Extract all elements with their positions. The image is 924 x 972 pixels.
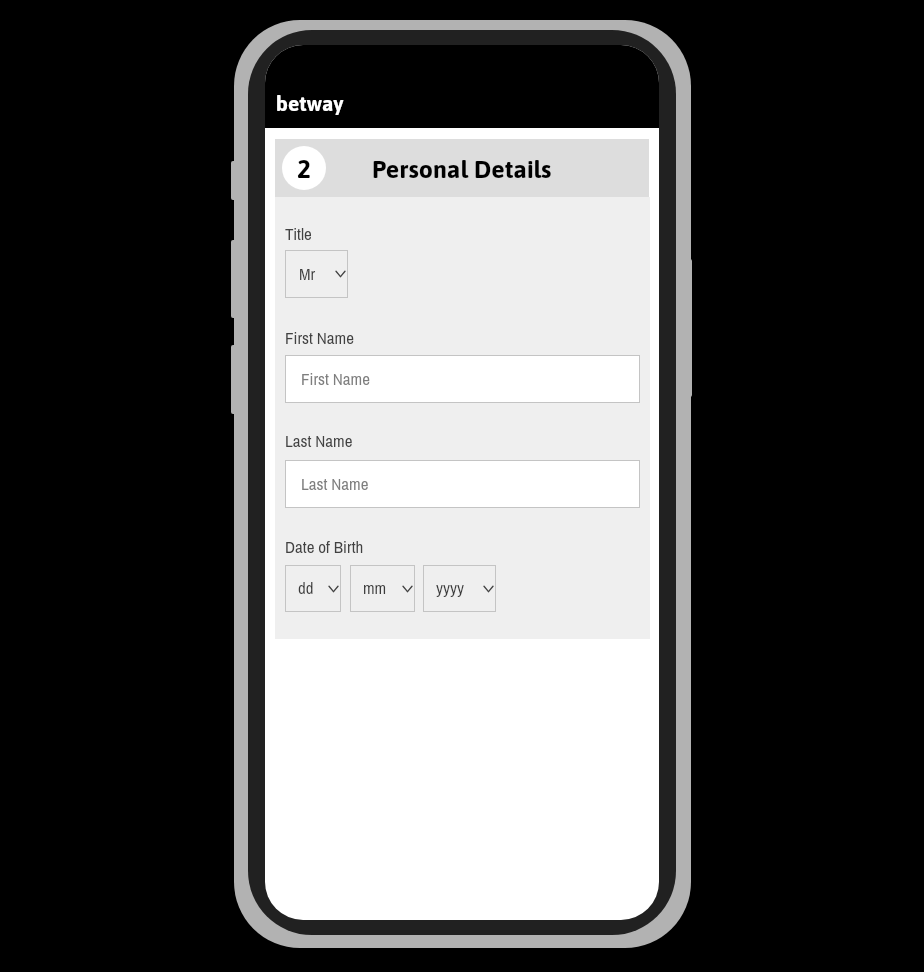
staticText: dd [298,576,314,599]
staticText: 2 [297,154,311,184]
staticText: First Name [301,367,370,390]
staticText: First Name [285,326,354,349]
button[interactable]: dd dropdown [285,565,341,612]
staticText: Personal Details [372,155,552,184]
button[interactable]: Last Name [285,460,640,508]
staticText: yyyy [436,576,464,599]
staticText: Mr [299,262,316,285]
button[interactable]: yyyy dropdown [423,565,496,612]
staticText: betway [276,91,344,115]
button[interactable]: Mr dropdown [285,250,348,298]
staticText: mm [363,576,387,599]
staticText: Last Name [285,429,353,452]
button[interactable]: mm dropdown [350,565,415,612]
staticText: Title [285,222,312,245]
staticText: Last Name [301,472,369,495]
button[interactable]: 2 [275,139,649,197]
staticText: Date of Birth [285,535,364,558]
button[interactable]: First Name [285,355,640,403]
button[interactable]: betway home [276,91,344,115]
